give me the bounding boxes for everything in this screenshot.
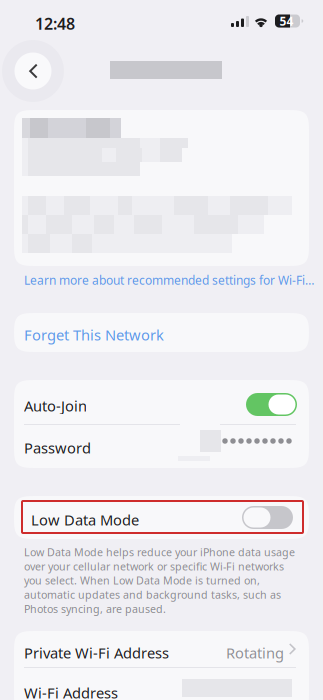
staticText: Low Data Mode helps reduce your iPhone d…	[24, 545, 295, 616]
staticText: 12:48	[35, 13, 75, 34]
staticText: Auto-Join	[24, 396, 87, 415]
button[interactable]: Learn more about recommended settings fo…	[24, 273, 314, 287]
staticText: Learn more about recommended settings fo…	[24, 272, 314, 288]
button[interactable]: Private Wi-Fi Address	[14, 631, 309, 667]
staticText: 54	[279, 13, 293, 29]
staticText: Password	[24, 438, 91, 457]
staticText: Private Wi-Fi Address	[24, 643, 169, 662]
staticText: Wi-Fi Address	[24, 683, 118, 700]
staticText: Low Data Mode	[31, 510, 139, 529]
button[interactable]: Forget This Network	[14, 313, 309, 352]
staticText: Forget This Network	[24, 325, 164, 344]
button[interactable]: Low Data Mode	[22, 501, 303, 533]
button[interactable]: Back	[2, 40, 64, 102]
staticText: Rotating	[226, 643, 284, 662]
